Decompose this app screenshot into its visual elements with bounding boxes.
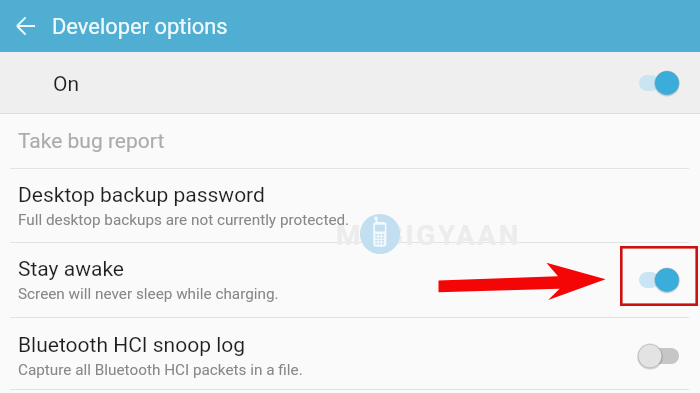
staticText: Full desktop backups are not currently p…: [18, 211, 350, 229]
staticText: MOBIGYAAN: [336, 219, 522, 252]
staticText: Desktop backup password: [18, 183, 265, 208]
staticText: Stay awake: [18, 257, 124, 282]
button[interactable]: Take bug report: [0, 114, 700, 168]
button[interactable]: Bluetooth HCI snoop log: [0, 318, 700, 393]
button[interactable]: Desktop backup password: [0, 169, 700, 242]
button[interactable]: Off: [644, 336, 700, 376]
staticText: Developer options: [52, 14, 228, 40]
button[interactable]: Stay awake: [0, 243, 700, 317]
staticText: Bluetooth HCI snoop log: [18, 333, 246, 358]
button[interactable]: On: [0, 52, 700, 113]
button[interactable]: Navigate up: [0, 0, 52, 52]
staticText: On: [53, 72, 80, 97]
button[interactable]: Developer options enabled: [644, 63, 700, 103]
staticText: Take bug report: [18, 129, 165, 154]
button[interactable]: On: [644, 260, 700, 300]
staticText: Screen will never sleep while charging.: [18, 285, 279, 303]
staticText: Capture all Bluetooth HCI packets in a f…: [18, 361, 303, 379]
